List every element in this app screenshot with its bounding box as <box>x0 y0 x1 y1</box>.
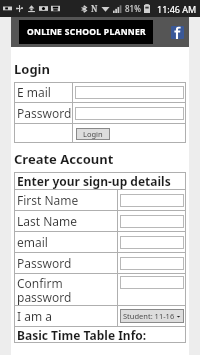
staticText: Password <box>17 105 72 121</box>
button[interactable]: ONLINE SCHOOL PLANNER <box>19 20 153 44</box>
staticText: Login <box>14 60 50 78</box>
button[interactable] <box>75 86 184 99</box>
button[interactable]: E mail <box>14 82 186 102</box>
button[interactable]: Facebook <box>171 26 184 39</box>
button[interactable]: Confirm password <box>14 274 186 305</box>
button[interactable] <box>75 107 184 120</box>
button[interactable]: First Name <box>14 190 186 210</box>
staticText: E mail <box>17 84 51 100</box>
button[interactable]: Password <box>14 103 186 123</box>
staticText: Password <box>17 255 72 271</box>
staticText: Confirm password <box>17 275 72 305</box>
button[interactable] <box>120 236 184 249</box>
button[interactable] <box>120 215 184 228</box>
staticText: email <box>17 234 48 250</box>
staticText: I am a <box>17 308 52 324</box>
button[interactable] <box>120 194 184 207</box>
button[interactable]: Login <box>76 128 110 140</box>
staticText: Login <box>83 129 103 139</box>
staticText: N <box>91 3 98 14</box>
staticText: Basic Time Table Info: <box>17 327 147 343</box>
button[interactable] <box>120 276 184 289</box>
button[interactable]: Password <box>14 253 186 273</box>
staticText: 81% <box>125 3 141 14</box>
staticText: First Name <box>17 192 79 208</box>
staticText: 11:46 AM <box>157 3 197 15</box>
button[interactable]: email <box>14 232 186 252</box>
staticText: Create Account <box>14 150 114 168</box>
staticText: Last Name <box>17 213 78 229</box>
button[interactable]: I am a <box>14 306 186 326</box>
button[interactable]: Student: 11-16 <box>120 309 184 323</box>
button[interactable]: Last Name <box>14 211 186 231</box>
staticText: Enter your sign-up details <box>17 173 171 189</box>
staticText: ONLINE SCHOOL PLANNER <box>27 26 146 38</box>
staticText: Student: 11-16 <box>123 311 176 321</box>
button[interactable] <box>120 257 184 270</box>
